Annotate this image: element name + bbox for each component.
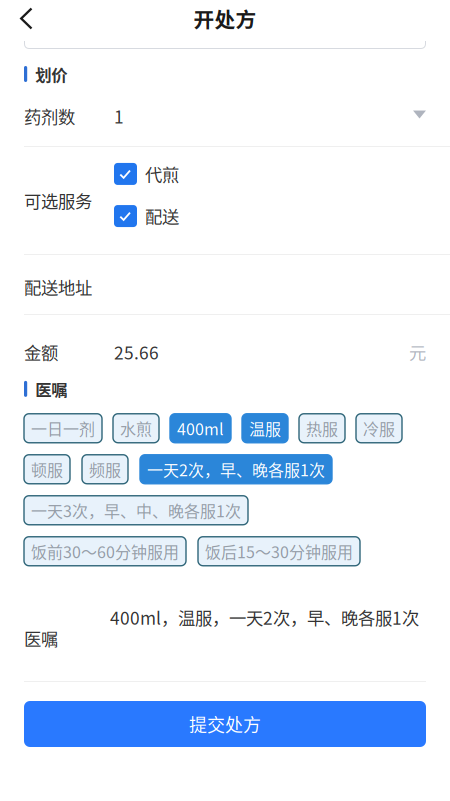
staticText: 一天3次，早、中、晚各服1次 — [31, 499, 241, 522]
button[interactable]: 返回 — [0, 0, 57, 37]
staticText: 医嘱 — [35, 377, 67, 401]
staticText: 一天2次，早、晚各服1次 — [147, 458, 325, 481]
staticText: 药剂数 — [24, 103, 75, 129]
button[interactable]: 顿服 — [24, 455, 70, 484]
staticText: 提交处方 — [189, 711, 261, 737]
button[interactable]: 配送 — [114, 203, 270, 229]
staticText: 温服 — [249, 417, 281, 440]
staticText: 1 — [114, 103, 124, 129]
button[interactable]: 400ml — [170, 414, 231, 443]
button[interactable]: 饭前30～60分钟服用 — [24, 537, 186, 566]
staticText: 一日一剂 — [31, 417, 95, 440]
button[interactable]: 冷服 — [356, 414, 402, 443]
button[interactable]: 代煎 — [114, 161, 270, 186]
button[interactable]: 温服 — [242, 414, 288, 443]
staticText: 热服 — [306, 417, 338, 440]
staticText: 医嘱 — [24, 626, 58, 651]
staticText: 水煎 — [120, 417, 152, 440]
staticText: 冷服 — [363, 417, 395, 440]
button[interactable]: 一日一剂 — [24, 414, 102, 443]
staticText: 配送 — [145, 203, 179, 229]
button[interactable]: 药剂数 — [0, 86, 450, 146]
staticText: 代煎 — [145, 161, 179, 186]
staticText: 饭前30～60分钟服用 — [31, 540, 179, 563]
button[interactable]: 饭后15～30分钟服用 — [198, 537, 360, 566]
staticText: 划价 — [35, 62, 67, 86]
button[interactable]: 配送地址 — [0, 255, 450, 314]
staticText: 配送地址 — [24, 274, 92, 300]
button[interactable]: 一天2次，早、晚各服1次 — [140, 455, 332, 484]
staticText: 开处方 — [193, 3, 256, 33]
staticText: 频服 — [89, 458, 121, 481]
button[interactable]: 一天3次，早、中、晚各服1次 — [24, 496, 248, 525]
button[interactable]: 频服 — [82, 455, 128, 484]
button[interactable]: 水煎 — [113, 414, 159, 443]
staticText: 25.66 — [114, 339, 159, 365]
staticText: 金额 — [24, 339, 58, 365]
staticText: 元 — [409, 339, 426, 365]
staticText: 可选服务 — [24, 188, 92, 213]
staticText: 400ml — [177, 417, 224, 440]
button[interactable]: 热服 — [299, 414, 345, 443]
staticText: 饭后15～30分钟服用 — [205, 540, 353, 563]
button[interactable]: 提交处方 — [0, 701, 450, 747]
staticText: 顿服 — [31, 458, 63, 481]
staticText: 400ml，温服，一天2次，早、晚各服1次 — [110, 605, 419, 630]
